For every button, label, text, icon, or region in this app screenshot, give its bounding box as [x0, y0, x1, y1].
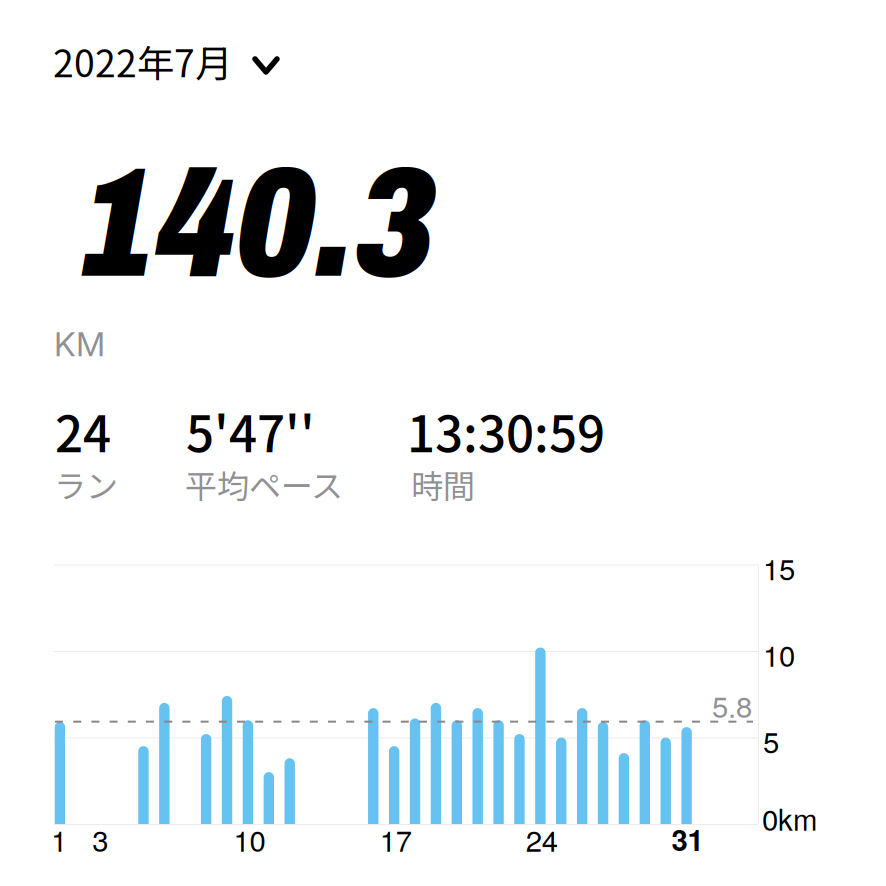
staticText: KM: [54, 324, 105, 364]
staticText: 1: [51, 818, 67, 860]
staticText: 3: [92, 818, 108, 860]
staticText: 15: [763, 546, 795, 588]
staticText: 時間: [411, 461, 475, 507]
staticText: 17: [380, 818, 412, 860]
staticText: 5'47'': [186, 395, 315, 466]
staticText: 24: [526, 818, 558, 860]
staticText: 2022年7月: [53, 34, 232, 88]
staticText: 5: [763, 719, 779, 761]
staticText: 13:30:59: [407, 395, 605, 466]
staticText: 10: [233, 818, 265, 860]
staticText: 24: [55, 395, 111, 466]
staticText: 平均ペース: [185, 461, 343, 507]
staticText: 140.3: [83, 140, 435, 308]
staticText: 10: [763, 633, 795, 675]
staticText: 0km: [762, 797, 817, 839]
button[interactable]: 2022年7月: [53, 37, 303, 89]
staticText: 5.8: [712, 684, 752, 726]
staticText: 31: [672, 818, 704, 860]
staticText: ラン: [54, 461, 118, 507]
